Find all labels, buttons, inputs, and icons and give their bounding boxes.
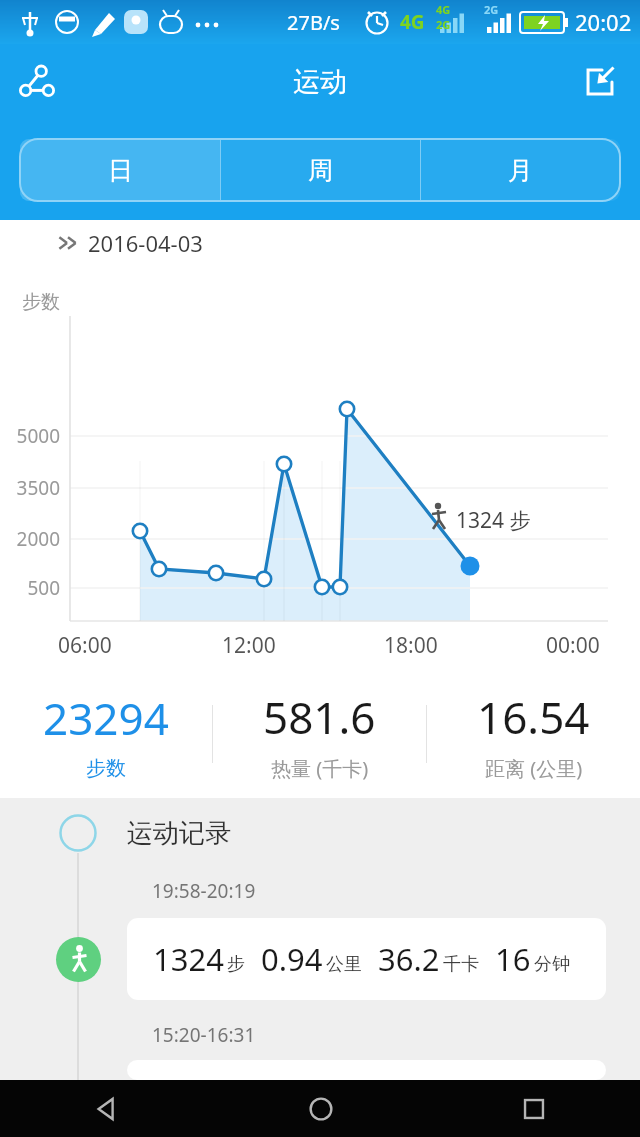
staticText: 1324 bbox=[153, 938, 224, 980]
button[interactable]: 日 bbox=[20, 139, 220, 201]
button[interactable]: 581.6 bbox=[213, 687, 426, 782]
staticText: 周 bbox=[308, 155, 333, 186]
staticText: 0.94 bbox=[261, 938, 323, 980]
staticText: 运动记录 bbox=[127, 817, 231, 850]
staticText: 公里 bbox=[326, 953, 362, 976]
staticText: 2G bbox=[436, 17, 451, 32]
staticText: 4G bbox=[436, 2, 451, 17]
staticText: 23294 bbox=[43, 688, 169, 748]
staticText: 2000 bbox=[0, 526, 60, 552]
staticText: 12:00 bbox=[222, 631, 276, 660]
staticText: 3500 bbox=[0, 475, 60, 501]
staticText: 15:20-16:31 bbox=[152, 1022, 256, 1048]
staticText: 581.6 bbox=[263, 687, 376, 747]
button[interactable]: Import bbox=[572, 54, 628, 110]
staticText: 27B/s bbox=[287, 9, 340, 36]
button[interactable]: 23294 bbox=[0, 688, 212, 781]
button[interactable]: Recents bbox=[427, 1080, 640, 1137]
staticText: 16 bbox=[495, 938, 531, 980]
staticText: 步数 bbox=[86, 756, 126, 781]
staticText: 2016-04-03 bbox=[88, 228, 203, 258]
staticText: 步 bbox=[227, 953, 245, 976]
button[interactable]: Share bbox=[8, 53, 66, 111]
button[interactable]: 2016-04-03 bbox=[56, 220, 640, 266]
staticText: 19:58-20:19 bbox=[152, 878, 256, 904]
staticText: 4G bbox=[400, 9, 425, 35]
staticText: 00:00 bbox=[546, 631, 600, 660]
button[interactable]: Back bbox=[0, 1080, 214, 1137]
staticText: 16.54 bbox=[477, 687, 590, 747]
staticText: 06:00 bbox=[58, 631, 112, 660]
staticText: 分钟 bbox=[534, 953, 570, 976]
staticText: 月 bbox=[508, 155, 533, 186]
staticText: 500 bbox=[0, 575, 60, 601]
button[interactable]: 周 bbox=[220, 139, 420, 201]
staticText: 1324 步 bbox=[456, 506, 531, 535]
button[interactable]: 1324 bbox=[127, 918, 606, 1000]
staticText: 热量 (千卡) bbox=[271, 755, 369, 782]
staticText: 步数 bbox=[22, 290, 60, 314]
staticText: 运动 bbox=[293, 65, 347, 99]
staticText: 20:02 bbox=[575, 7, 632, 37]
staticText: 日 bbox=[108, 155, 133, 186]
staticText: 千卡 bbox=[443, 953, 479, 976]
button[interactable]: 16.54 bbox=[427, 687, 640, 782]
staticText: 5000 bbox=[0, 423, 60, 449]
staticText: 18:00 bbox=[384, 631, 438, 660]
staticText: 36.2 bbox=[378, 938, 440, 980]
button[interactable]: 月 bbox=[420, 139, 620, 201]
staticText: 2G bbox=[484, 2, 499, 17]
staticText: 距离 (公里) bbox=[485, 755, 583, 782]
button[interactable]: Home bbox=[214, 1080, 427, 1137]
